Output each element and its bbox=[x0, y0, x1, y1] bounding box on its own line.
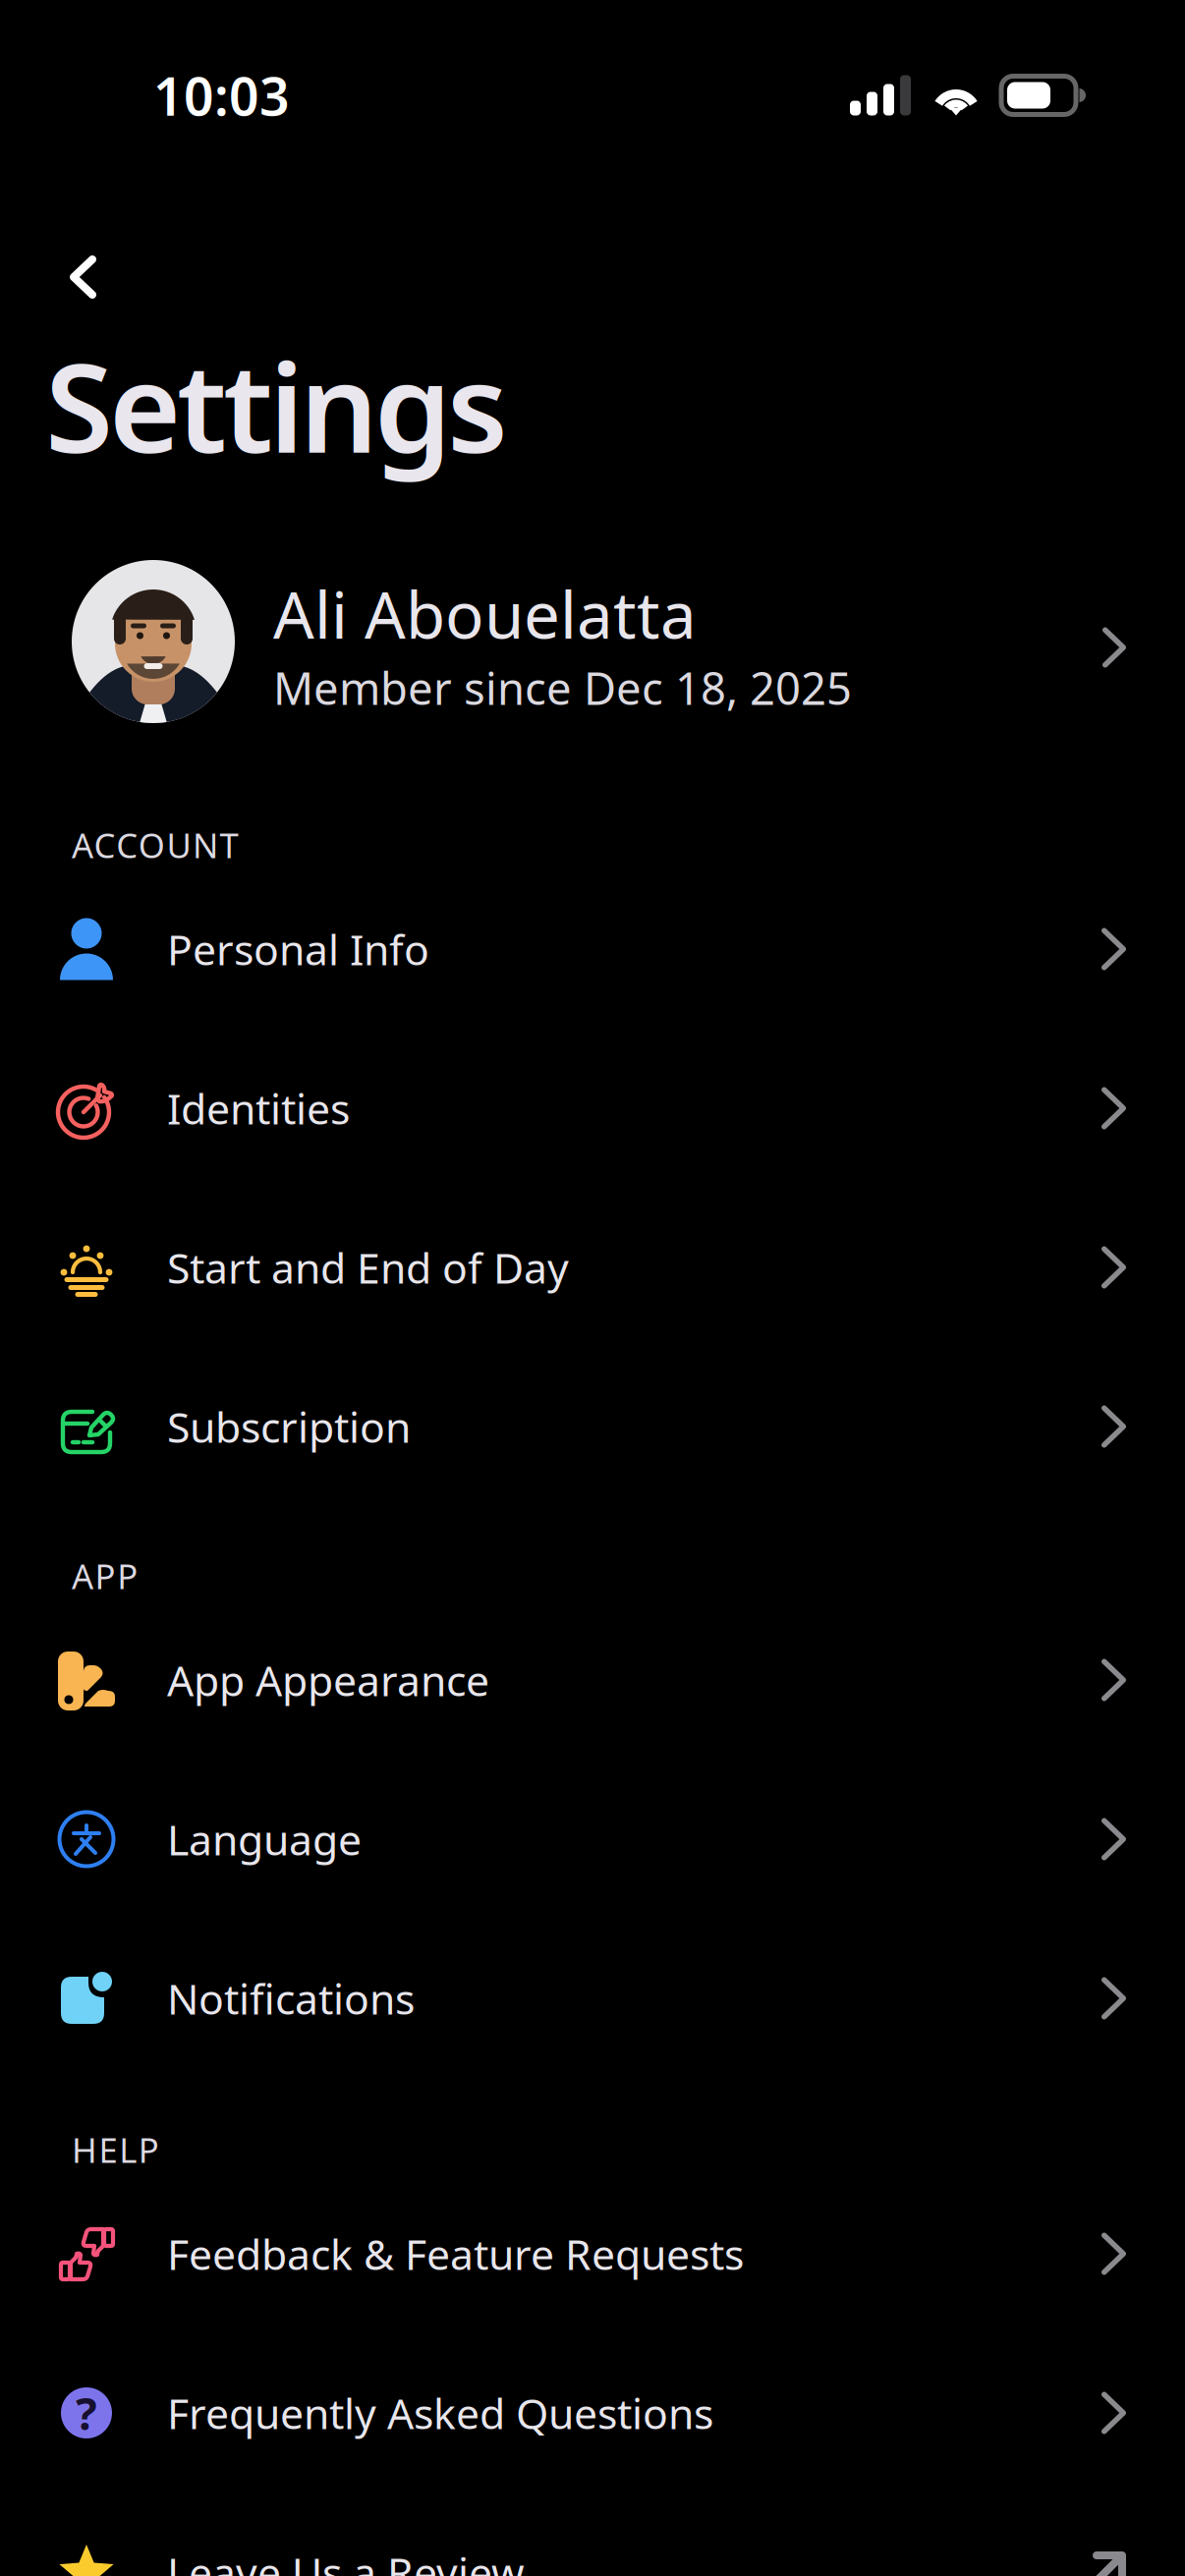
staticText: Leave Us a Review bbox=[167, 2544, 525, 2576]
button[interactable]: Personal Info bbox=[0, 869, 1185, 1029]
staticText: ACCOUNT bbox=[72, 822, 238, 868]
button[interactable]: ? bbox=[0, 2333, 1185, 2492]
staticText: App Appearance bbox=[167, 1652, 489, 1708]
staticText: Settings bbox=[45, 323, 508, 487]
button[interactable]: Identities bbox=[0, 1029, 1185, 1188]
staticText: HELP bbox=[72, 2127, 159, 2172]
button[interactable]: Subscription bbox=[0, 1347, 1185, 1506]
button[interactable]: Back bbox=[0, 240, 136, 314]
staticText: Frequently Asked Questions bbox=[167, 2385, 713, 2441]
staticText: ? bbox=[76, 2383, 97, 2442]
staticText: Ali Abouelatta bbox=[273, 571, 697, 656]
button[interactable]: Ali Abouelatta bbox=[0, 565, 1185, 730]
button[interactable]: Leave Us a Review bbox=[0, 2492, 1185, 2576]
button[interactable]: App Appearance bbox=[0, 1600, 1185, 1760]
staticText: APP bbox=[72, 1553, 138, 1598]
staticText: 10:03 bbox=[153, 61, 290, 130]
staticText: Subscription bbox=[167, 1399, 411, 1454]
button[interactable]: Feedback & Feature Requests bbox=[0, 2174, 1185, 2333]
button[interactable]: Language bbox=[0, 1760, 1185, 1919]
button[interactable]: Notifications bbox=[0, 1919, 1185, 2078]
staticText: Personal Info bbox=[167, 921, 429, 977]
staticText: Member since Dec 18, 2025 bbox=[273, 658, 852, 717]
staticText: Identities bbox=[167, 1080, 350, 1136]
staticText: Feedback & Feature Requests bbox=[167, 2226, 744, 2282]
button[interactable]: Start and End of Day bbox=[0, 1188, 1185, 1347]
staticText: Language bbox=[167, 1811, 362, 1867]
staticText: Start and End of Day bbox=[167, 1240, 569, 1295]
staticText: Notifications bbox=[167, 1971, 415, 2026]
